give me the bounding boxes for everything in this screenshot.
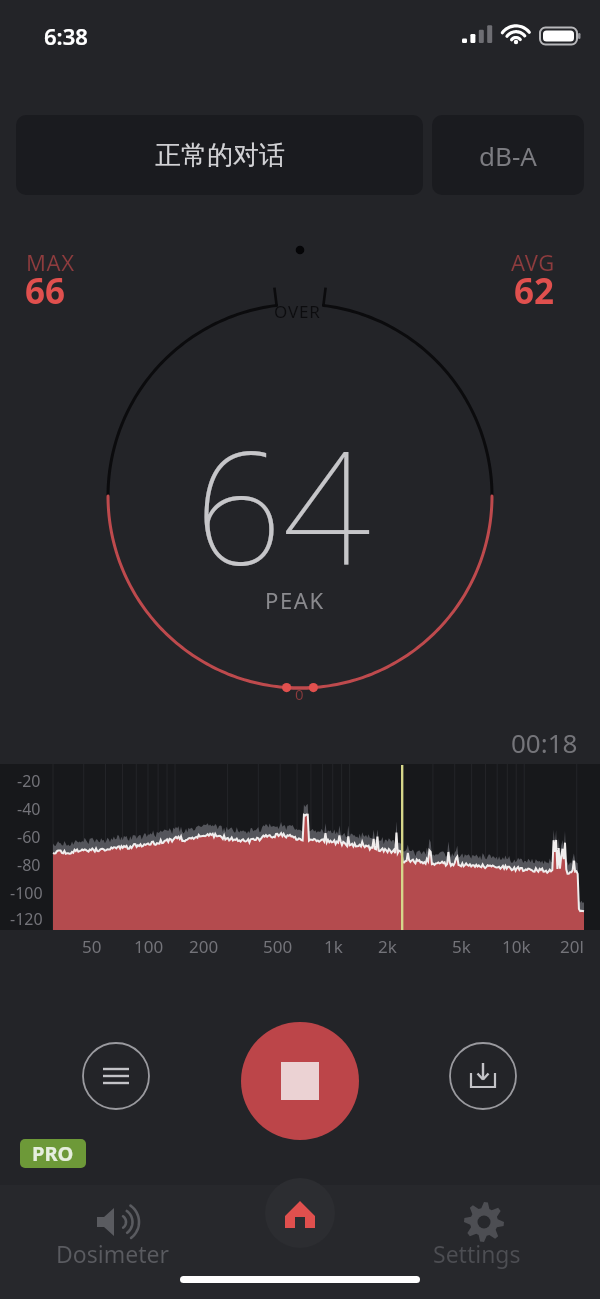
staticText: 6:38 bbox=[44, 21, 88, 51]
button[interactable]: Settings bbox=[390, 1190, 580, 1270]
staticText: MAX bbox=[26, 247, 75, 277]
button[interactable]: dB-A bbox=[432, 115, 584, 195]
staticText: 00:18 bbox=[511, 725, 578, 760]
staticText: 100 bbox=[134, 935, 164, 958]
staticText: 500 bbox=[263, 935, 293, 958]
staticText: dB-A bbox=[479, 138, 537, 173]
staticText: -60 bbox=[17, 826, 41, 848]
staticText: 20l bbox=[560, 935, 584, 958]
staticText: 50 bbox=[82, 935, 102, 958]
button[interactable]: List bbox=[82, 1042, 150, 1110]
button[interactable]: PRO bbox=[20, 1139, 86, 1168]
staticText: -80 bbox=[17, 854, 41, 876]
staticText: -40 bbox=[17, 798, 41, 820]
staticText: -120 bbox=[10, 908, 43, 930]
staticText: AVG bbox=[511, 247, 555, 277]
button[interactable]: Home bbox=[265, 1178, 335, 1248]
staticText: PRO bbox=[32, 1140, 74, 1167]
staticText: 2k bbox=[378, 935, 397, 958]
button[interactable]: 正常的对话 bbox=[16, 115, 423, 195]
staticText: 0 bbox=[295, 684, 304, 704]
button[interactable]: Dosimeter bbox=[20, 1190, 210, 1270]
staticText: Settings bbox=[433, 1238, 521, 1269]
button[interactable]: Save bbox=[449, 1042, 517, 1110]
staticText: 5k bbox=[452, 935, 471, 958]
staticText: 62 bbox=[514, 267, 555, 315]
staticText: Dosimeter bbox=[56, 1238, 169, 1269]
staticText: 1k bbox=[324, 935, 343, 958]
staticText: 200 bbox=[189, 935, 219, 958]
staticText: 10k bbox=[502, 935, 531, 958]
staticText: OVER bbox=[274, 300, 321, 323]
staticText: PEAK bbox=[265, 585, 325, 615]
staticText: 正常的对话 bbox=[155, 139, 285, 172]
staticText: -20 bbox=[17, 770, 41, 792]
button[interactable]: Stop recording bbox=[241, 1022, 359, 1140]
staticText: 64 bbox=[194, 398, 371, 609]
staticText: 66 bbox=[25, 267, 66, 315]
staticText: -100 bbox=[10, 882, 43, 904]
